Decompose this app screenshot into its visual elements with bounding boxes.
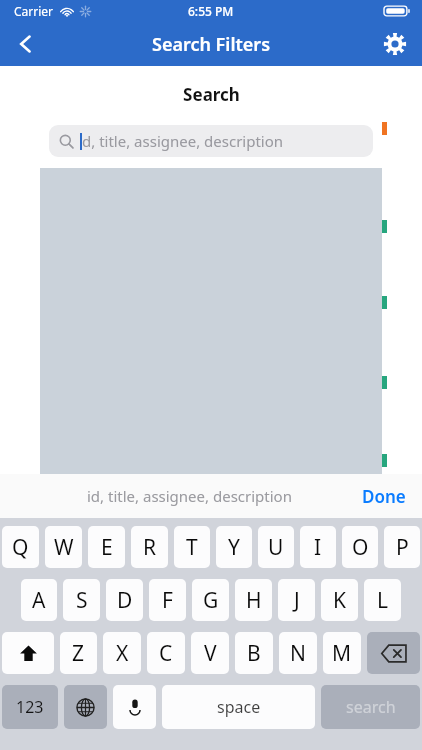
staticText: 6:55 PM (188, 3, 234, 19)
staticText: V (204, 639, 217, 668)
button[interactable] (370, 114, 422, 494)
button[interactable]: T (174, 526, 210, 568)
staticText: Done (362, 485, 406, 508)
button[interactable]: L (364, 579, 401, 621)
staticText: Z (72, 639, 85, 668)
button[interactable]: A (21, 579, 57, 621)
button[interactable]: Done (356, 479, 412, 514)
staticText: W (54, 533, 74, 562)
button[interactable]: D (106, 579, 143, 621)
staticText: S (76, 586, 88, 615)
button[interactable]: Z (60, 632, 97, 674)
staticText: Q (12, 533, 29, 562)
button[interactable]: d, title, assignee, description (49, 125, 373, 157)
staticText: N (290, 639, 306, 668)
button[interactable]: V (191, 632, 229, 674)
button[interactable]: C (147, 632, 185, 674)
button[interactable]: d, title, assignee, description (40, 114, 382, 494)
button[interactable]: B (235, 632, 273, 674)
staticText: U (268, 533, 284, 562)
button[interactable]: 123 (2, 685, 58, 729)
staticText: Carrier (14, 3, 54, 19)
staticText: M (332, 639, 352, 668)
button[interactable]: N (279, 632, 317, 674)
button[interactable]: search (321, 685, 420, 729)
button[interactable]: Shift (2, 632, 54, 674)
staticText: E (101, 533, 113, 562)
staticText: Y (228, 533, 240, 562)
staticText: d, title, assignee, description (82, 131, 284, 151)
staticText: G (203, 586, 219, 615)
button[interactable]: O (342, 526, 378, 568)
staticText: search (346, 696, 396, 718)
button[interactable]: U (258, 526, 294, 568)
button[interactable]: H (235, 579, 272, 621)
button[interactable]: Dictate (113, 685, 156, 729)
button[interactable]: W (45, 526, 82, 568)
staticText: P (396, 533, 409, 562)
button[interactable]: K (321, 579, 358, 621)
staticText: Search Filters (152, 32, 271, 57)
staticText: F (162, 586, 173, 615)
button[interactable]: Change keyboard language (64, 685, 107, 729)
staticText: H (246, 586, 262, 615)
button[interactable]: X (103, 632, 141, 674)
staticText: L (377, 586, 389, 615)
staticText: C (159, 639, 173, 668)
staticText: O (352, 533, 369, 562)
button[interactable]: M (323, 632, 361, 674)
staticText: id, title, assignee, description (87, 486, 292, 506)
staticText: D (117, 586, 133, 615)
button[interactable]: Settings (368, 22, 422, 66)
staticText: I (314, 533, 322, 562)
button[interactable]: P (384, 526, 420, 568)
button[interactable]: Q (2, 526, 39, 568)
button[interactable]: space (162, 685, 315, 729)
button[interactable]: F (149, 579, 186, 621)
staticText: Search (183, 83, 240, 106)
staticText: R (143, 533, 157, 562)
staticText: K (333, 586, 346, 615)
button[interactable]: S (63, 579, 100, 621)
staticText: X (116, 639, 129, 668)
button[interactable]: Back (0, 22, 52, 66)
staticText: B (247, 639, 261, 668)
staticText: J (294, 586, 300, 615)
staticText: A (32, 586, 46, 615)
button[interactable]: Y (216, 526, 252, 568)
button[interactable]: Backspace (367, 632, 420, 674)
staticText: T (186, 533, 198, 562)
button[interactable]: E (88, 526, 125, 568)
button[interactable]: J (278, 579, 315, 621)
button[interactable]: I (300, 526, 336, 568)
staticText: space (217, 696, 261, 718)
button[interactable]: R (131, 526, 168, 568)
staticText: 123 (16, 696, 44, 718)
button[interactable]: G (192, 579, 229, 621)
